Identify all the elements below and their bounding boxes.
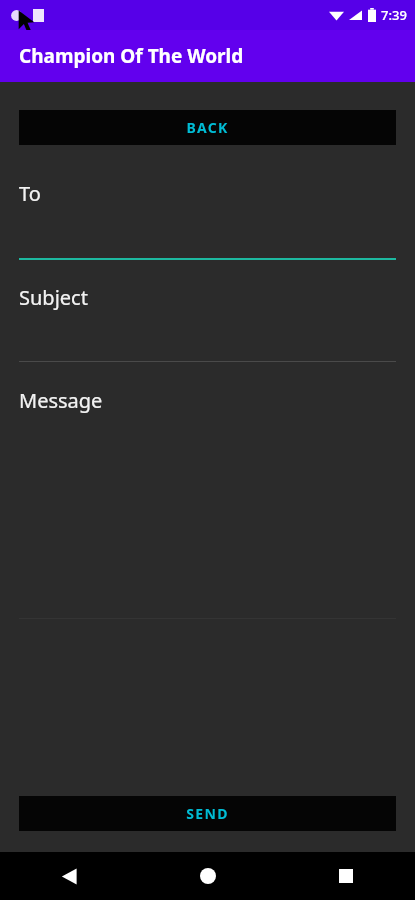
- staticText: BACK: [186, 118, 229, 137]
- button[interactable]: Back: [0, 852, 139, 900]
- staticText: 7:39: [381, 6, 407, 24]
- staticText: SEND: [186, 804, 229, 823]
- staticText: Champion Of The World: [19, 43, 244, 69]
- button[interactable]: Recent apps: [277, 852, 415, 900]
- staticText: Message: [19, 387, 103, 414]
- button[interactable]: Home: [139, 852, 277, 900]
- button[interactable]: BACK: [19, 110, 396, 145]
- button[interactable]: SEND: [19, 796, 396, 831]
- staticText: Subject: [19, 284, 88, 311]
- staticText: To: [19, 180, 41, 207]
